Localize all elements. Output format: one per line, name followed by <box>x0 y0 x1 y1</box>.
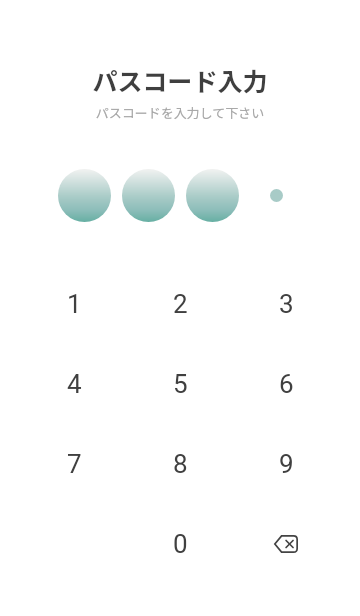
staticText: 8 <box>173 449 188 479</box>
staticText: 1 <box>67 289 82 319</box>
staticText: 3 <box>279 289 294 319</box>
button[interactable]: Backspace <box>233 504 339 584</box>
button[interactable]: 5 <box>127 344 233 424</box>
staticText: 2 <box>173 289 188 319</box>
button[interactable]: 4 <box>21 344 127 424</box>
button[interactable]: 2 <box>127 264 233 344</box>
staticText: 7 <box>67 449 82 479</box>
staticText: 0 <box>173 529 188 559</box>
button[interactable]: 3 <box>233 264 339 344</box>
other: Backspace <box>274 535 298 553</box>
staticText: 6 <box>279 369 294 399</box>
staticText: 9 <box>279 449 294 479</box>
button[interactable]: 8 <box>127 424 233 504</box>
staticText: 5 <box>173 369 188 399</box>
button[interactable]: 6 <box>233 344 339 424</box>
button[interactable]: 7 <box>21 424 127 504</box>
button[interactable]: 0 <box>127 504 233 584</box>
staticText: パスコード入力 <box>0 62 360 98</box>
staticText: パスコードを入力して下さい <box>0 103 360 122</box>
button[interactable]: 9 <box>233 424 339 504</box>
button[interactable]: 1 <box>21 264 127 344</box>
staticText: 4 <box>67 369 82 399</box>
